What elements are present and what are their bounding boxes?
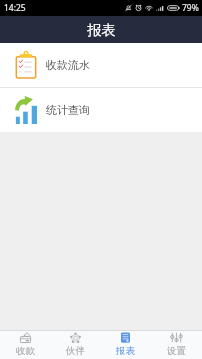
staticText: 报表	[116, 345, 135, 357]
button[interactable]: 统计查询	[0, 88, 202, 132]
other: 设置	[171, 332, 182, 343]
other: 收款	[20, 332, 31, 343]
staticText: 收款流水	[46, 58, 90, 72]
button[interactable]: 设置	[151, 330, 202, 359]
button[interactable]: 收款	[0, 330, 50, 359]
staticText: 79%	[182, 2, 199, 14]
staticText: 伙伴	[66, 345, 85, 357]
staticText: 报表	[87, 21, 116, 39]
staticText: 14:25	[4, 2, 26, 14]
staticText: 收款	[16, 345, 35, 357]
other: 报表	[120, 332, 131, 343]
button[interactable]: 伙伴	[50, 330, 100, 359]
button[interactable]: 收款流水	[0, 43, 202, 87]
staticText: 统计查询	[46, 103, 90, 117]
button[interactable]: 报表	[100, 330, 151, 359]
other: 伙伴	[70, 332, 81, 343]
staticText: 设置	[167, 345, 186, 357]
